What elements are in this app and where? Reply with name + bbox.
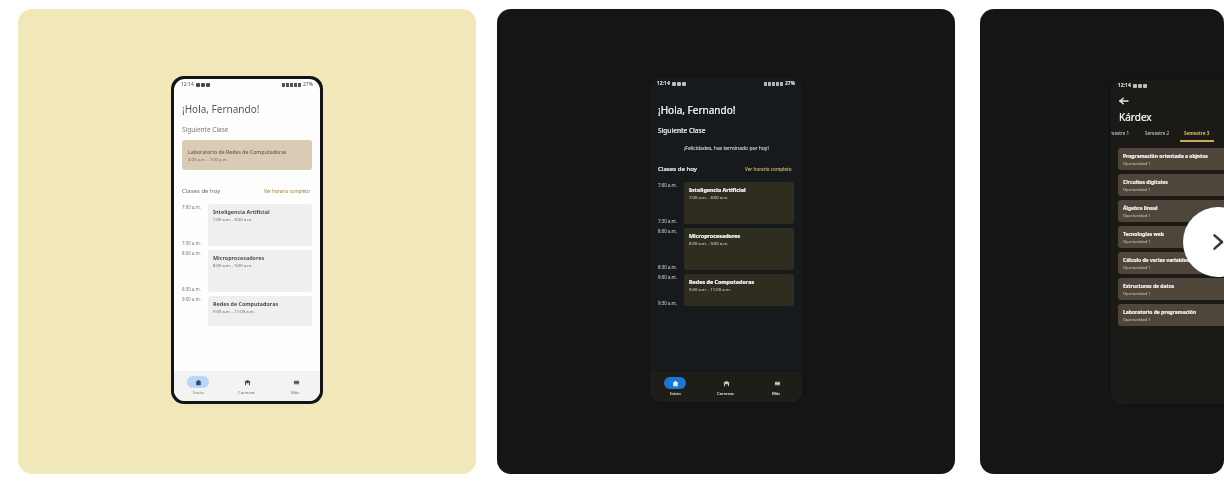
staticText: Oportunidad 1: [1123, 265, 1151, 270]
staticText: Oportunidad 1: [1123, 317, 1151, 322]
staticText: 12:14: [181, 81, 194, 88]
staticText: Más: [291, 390, 300, 396]
button[interactable]: Ver horario completo: [262, 186, 312, 196]
staticText: Inteligencia Artificial: [213, 208, 270, 215]
staticText: Carreras: [238, 390, 255, 396]
staticText: Clases de hoy: [658, 165, 697, 173]
button[interactable]: Más: [271, 371, 320, 401]
button[interactable]: Circuitos digitales: [1118, 174, 1224, 196]
staticText: Oportunidad 1: [1123, 213, 1151, 218]
staticText: Semestre 1: [1111, 130, 1130, 136]
staticText: Programación orientada a objetos: [1123, 153, 1208, 160]
staticText: Microprocesadores: [213, 254, 265, 261]
button[interactable]: Inicio: [650, 372, 700, 402]
button[interactable]: Ver horario completo: [743, 164, 794, 174]
staticText: 7:00 a.m. - 8:00 a.m.: [213, 217, 253, 223]
button[interactable]: Semestre 3: [1177, 130, 1217, 142]
staticText: Estructuras de datos: [1123, 283, 1175, 290]
staticText: 8:00 a.m.: [182, 250, 201, 256]
button[interactable]: Redes de Computadoras: [684, 274, 794, 306]
staticText: Clases de hoy: [182, 187, 221, 195]
button[interactable]: Next: [1183, 207, 1224, 277]
staticText: Microprocesadores: [689, 232, 741, 239]
staticText: Oportunidad 1: [1123, 187, 1151, 192]
staticText: Siguiente Clase: [658, 126, 706, 135]
button[interactable]: 12:14: [18, 9, 476, 474]
button[interactable]: Microprocesadores: [684, 228, 794, 270]
button[interactable]: Inteligencia Artificial: [208, 204, 312, 246]
staticText: 9:00 a.m. - 11:00 a.m.: [689, 287, 731, 293]
staticText: Semestre 3: [1184, 130, 1210, 136]
button[interactable]: Carreras: [700, 372, 751, 402]
staticText: 7:00 a.m.: [182, 204, 201, 210]
staticText: 8:00 a.m. - 9:00 a.m.: [689, 241, 729, 247]
staticText: 27%: [303, 81, 313, 88]
staticText: Laboratorio de programación: [1123, 309, 1197, 316]
staticText: Circuitos digitales: [1123, 179, 1168, 186]
staticText: Álgebra lineal: [1123, 205, 1158, 212]
staticText: Inicio: [670, 391, 681, 397]
staticText: 7:00 a.m.: [658, 182, 677, 188]
staticText: 9:30 a.m.: [658, 300, 677, 306]
staticText: Inicio: [193, 390, 204, 396]
staticText: 8:00 a.m. - 9:00 a.m.: [213, 263, 253, 269]
staticText: Cálculo de varias variables: [1123, 257, 1189, 264]
button[interactable]: Programación orientada a objetos: [1118, 148, 1224, 170]
staticText: 12:14: [657, 80, 670, 87]
staticText: 27%: [785, 80, 795, 87]
staticText: 8:00 a.m.: [658, 228, 677, 234]
staticText: Oportunidad 1: [1123, 239, 1151, 244]
staticText: 7:00 a.m. - 8:00 a.m.: [689, 195, 729, 201]
staticText: Inteligencia Artificial: [689, 186, 746, 193]
staticText: 7:30 a.m.: [182, 240, 201, 246]
button[interactable]: Back: [1117, 94, 1131, 108]
button[interactable]: Semestre 1: [1111, 130, 1137, 142]
staticText: Redes de Computadoras: [689, 278, 755, 285]
staticText: 4:00 p.m. - 7:00 p.m.: [188, 157, 228, 163]
staticText: Ver horario completo: [264, 188, 310, 194]
staticText: ¡Hola, Fernando!: [658, 103, 736, 117]
button[interactable]: Laboratorio de programación: [1118, 304, 1224, 326]
staticText: Laboratorio de Redes de Computadoras: [188, 148, 287, 155]
staticText: Oportunidad 1: [1123, 161, 1151, 166]
staticText: Kárdex: [1119, 110, 1152, 124]
button[interactable]: 12:14: [497, 9, 955, 474]
staticText: Redes de Computadoras: [213, 300, 279, 307]
staticText: ¡Hola, Fernando!: [182, 102, 260, 116]
button[interactable]: Álgebra lineal: [1118, 200, 1224, 222]
button[interactable]: Tecnologías web: [1118, 226, 1224, 248]
staticText: 8:30 a.m.: [658, 264, 677, 270]
button[interactable]: Carreras: [222, 371, 271, 401]
staticText: Tecnologías web: [1123, 231, 1164, 238]
button[interactable]: Estructuras de datos: [1118, 278, 1224, 300]
staticText: Semestre 2: [1145, 130, 1170, 136]
button[interactable]: Laboratorio de Redes de Computadoras: [182, 140, 312, 170]
button[interactable]: Microprocesadores: [208, 250, 312, 292]
staticText: 7:30 a.m.: [658, 218, 677, 224]
staticText: 12:14: [1118, 82, 1131, 89]
staticText: Más: [772, 391, 781, 397]
staticText: 9:00 a.m. - 11:00 a.m.: [213, 309, 255, 315]
button[interactable]: Más: [751, 372, 802, 402]
staticText: Oportunidad 1: [1123, 291, 1151, 296]
staticText: 9:00 a.m.: [658, 274, 677, 280]
button[interactable]: Redes de Computadoras: [208, 296, 312, 326]
button[interactable]: 12:14: [980, 9, 1224, 474]
staticText: ¡Felicidades, has terminado por hoy!: [684, 145, 769, 152]
staticText: Carreras: [717, 391, 734, 397]
button[interactable]: Inteligencia Artificial: [684, 182, 794, 224]
button[interactable]: Cálculo de varias variables: [1118, 252, 1224, 274]
button[interactable]: Inicio: [174, 371, 222, 401]
button[interactable]: Semestre 2: [1137, 130, 1177, 142]
staticText: Ver horario completo: [745, 166, 792, 172]
staticText: 9:00 a.m.: [182, 296, 201, 302]
staticText: Siguiente Clase: [182, 125, 229, 134]
staticText: 8:30 a.m.: [182, 286, 201, 292]
